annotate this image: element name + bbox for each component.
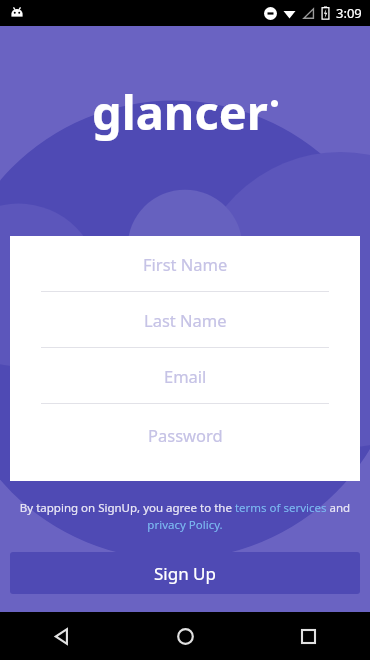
button[interactable]: First Name bbox=[10, 236, 360, 291]
staticText: Email bbox=[164, 365, 207, 387]
button[interactable]: Email bbox=[10, 348, 360, 403]
staticText: Last Name bbox=[144, 309, 227, 331]
button[interactable]: Password bbox=[10, 404, 360, 466]
staticText: Sign Up bbox=[154, 562, 216, 585]
staticText: Password bbox=[148, 424, 223, 446]
button[interactable]: Last Name bbox=[10, 292, 360, 347]
button[interactable]: Sign Up bbox=[10, 552, 360, 594]
staticText: glancer bbox=[92, 80, 268, 144]
button[interactable]: Back bbox=[0, 612, 124, 660]
button[interactable]: Recent apps bbox=[247, 612, 370, 660]
button[interactable]: Home bbox=[124, 612, 247, 660]
staticText: First Name bbox=[143, 253, 228, 275]
staticText: 3:09 bbox=[336, 4, 362, 22]
staticText: By tapping on SignUp, you agree to the t… bbox=[14, 500, 356, 533]
